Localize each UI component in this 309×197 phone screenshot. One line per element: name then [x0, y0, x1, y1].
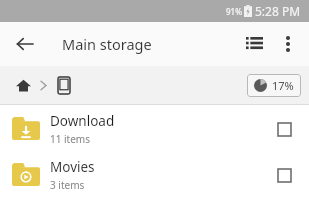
button[interactable]: Internal storage: [53, 74, 75, 96]
staticText: 11 items: [50, 132, 91, 146]
button[interactable]: Download: [0, 105, 309, 152]
staticText: 5:28 PM: [255, 3, 301, 19]
button[interactable]: Select Movies: [271, 162, 297, 188]
button[interactable]: More options: [271, 27, 305, 61]
button[interactable]: List view: [237, 27, 271, 61]
staticText: Movies: [50, 158, 95, 176]
button[interactable]: 17%: [247, 74, 301, 97]
staticText: 3 items: [50, 178, 85, 192]
button[interactable]: Select Download: [271, 116, 297, 142]
staticText: 91%: [226, 6, 242, 17]
staticText: 17%: [272, 78, 294, 93]
staticText: Main storage: [62, 34, 152, 54]
button[interactable]: Home: [12, 74, 34, 96]
button[interactable]: Back: [8, 27, 42, 61]
button[interactable]: Movies: [0, 152, 309, 197]
staticText: Download: [50, 112, 115, 130]
